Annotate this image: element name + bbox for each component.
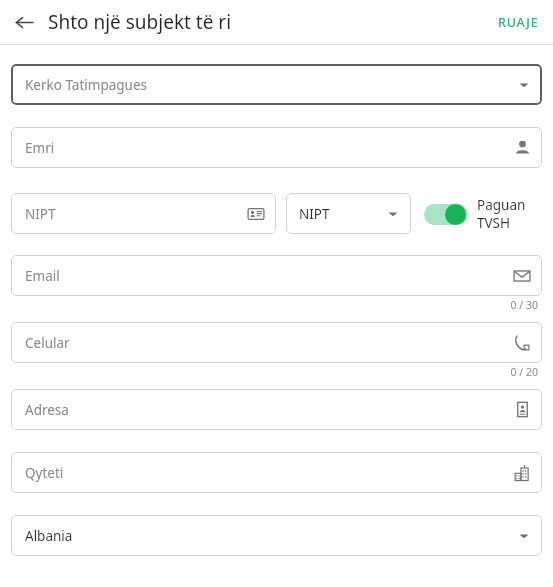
staticText: Celular (25, 334, 70, 352)
button[interactable]: Celular (11, 322, 542, 363)
button[interactable]: Albania (11, 515, 542, 556)
staticText: Adresa (25, 401, 69, 419)
staticText: Emri (25, 139, 55, 157)
button[interactable]: Kerko Tatimpagues (11, 64, 542, 105)
button[interactable]: NIPT (286, 193, 411, 234)
staticText: Shto një subjekt të ri (48, 9, 232, 35)
button[interactable]: NIPT (11, 193, 276, 234)
staticText: 0 / 20 (510, 365, 538, 379)
button[interactable]: Qyteti (11, 452, 542, 493)
button[interactable]: Paguan TVSH toggle (424, 201, 468, 227)
button[interactable]: Emri (11, 127, 542, 168)
staticText: NIPT (25, 205, 56, 223)
button[interactable]: Back (6, 4, 42, 40)
staticText: 0 / 30 (510, 298, 538, 312)
staticText: Paguan (477, 196, 526, 214)
button[interactable]: RUAJE (484, 6, 553, 39)
staticText: Kerko Tatimpagues (25, 76, 148, 94)
staticText: Qyteti (25, 464, 64, 482)
button[interactable]: Adresa (11, 389, 542, 430)
staticText: TVSH (477, 214, 511, 232)
staticText: Albania (25, 527, 73, 545)
staticText: Email (25, 267, 60, 285)
button[interactable]: Email (11, 255, 542, 296)
staticText: NIPT (299, 205, 330, 223)
staticText: RUAJE (498, 14, 539, 31)
